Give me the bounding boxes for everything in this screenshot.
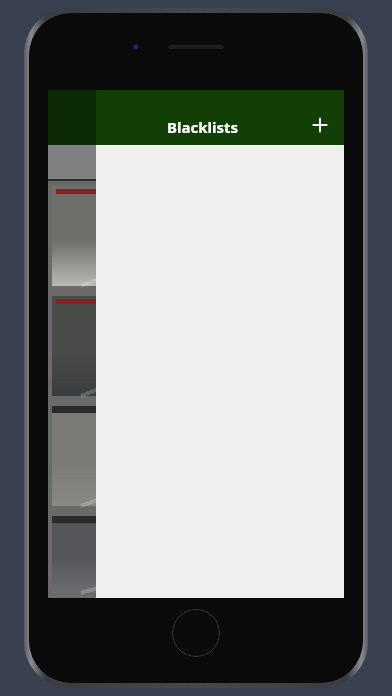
button[interactable]: Add blacklist <box>304 109 336 141</box>
button[interactable] <box>52 516 340 593</box>
button[interactable] <box>52 186 340 286</box>
button[interactable]: Home <box>172 609 220 657</box>
button[interactable] <box>52 406 340 506</box>
button[interactable] <box>52 296 340 396</box>
staticText: MENU <box>177 109 216 127</box>
staticText: Blacklists <box>167 117 238 137</box>
